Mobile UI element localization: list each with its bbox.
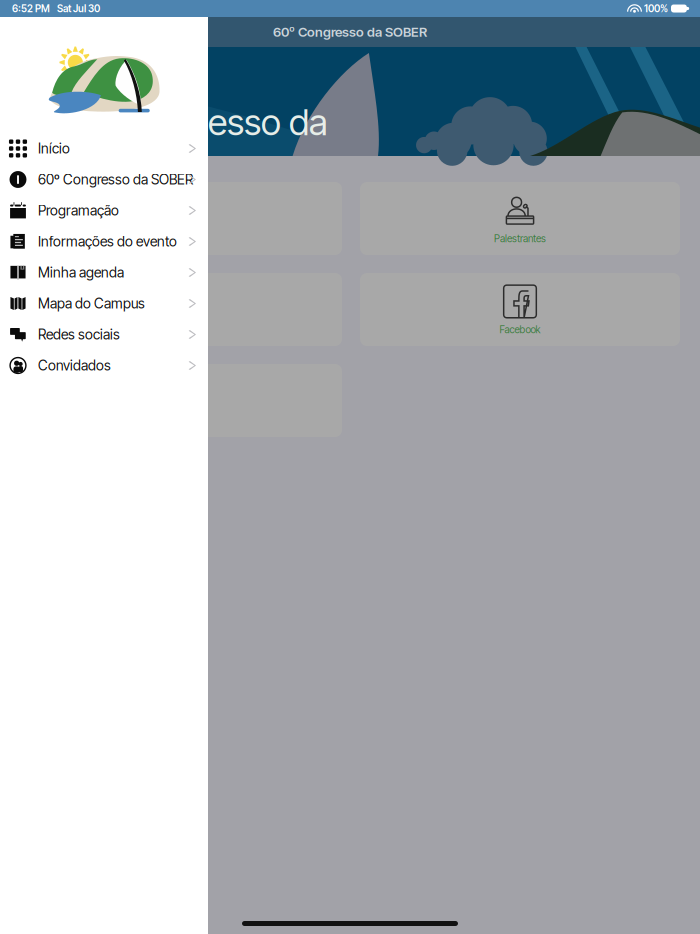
staticText: Palestrantes [494, 232, 546, 245]
button[interactable] [22, 364, 342, 437]
staticText: Facebook [499, 323, 540, 336]
staticText: Redes sociais [38, 326, 120, 343]
staticText: 6:52 PM [12, 2, 50, 15]
staticText: esso da [208, 100, 328, 144]
button[interactable]: Facebook [360, 273, 680, 346]
staticText: Convidados [38, 357, 111, 374]
staticText: Início [38, 140, 70, 157]
staticText: Minha agenda [38, 264, 124, 281]
button[interactable]: 60º Congresso da SOBER [0, 17, 700, 47]
button[interactable]: Redes sociais [0, 319, 208, 350]
button[interactable] [22, 273, 342, 346]
staticText: Informações do evento [38, 233, 177, 250]
button[interactable]: Minha agenda [0, 257, 208, 288]
staticText: Programação [38, 202, 119, 219]
staticText: 60º Congresso da SOBER [273, 24, 427, 40]
button[interactable]: Início [0, 133, 208, 164]
staticText: 60º Congresso da SOBER [38, 171, 193, 188]
staticText: 100% [644, 2, 668, 15]
button[interactable]: Convidados [0, 350, 208, 381]
button[interactable]: Informações do evento [0, 226, 208, 257]
button[interactable]: 60º Congresso da SOBER [0, 164, 208, 195]
staticText: Sat Jul 30 [57, 2, 100, 15]
button[interactable] [22, 182, 342, 255]
button[interactable]: Mapa do Campus [0, 288, 208, 319]
button[interactable]: Palestrantes [360, 182, 680, 255]
staticText: Mapa do Campus [38, 295, 145, 312]
button[interactable]: Programação [0, 195, 208, 226]
